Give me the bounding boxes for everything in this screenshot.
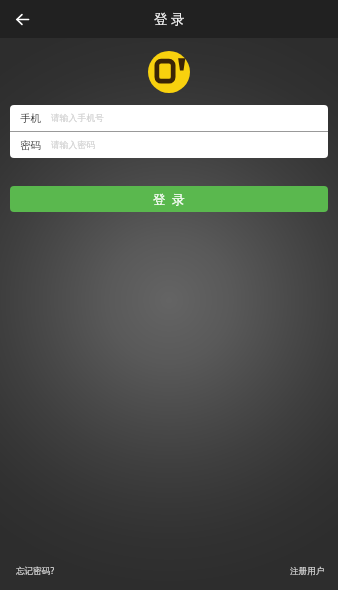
staticText: 登 录 [153, 191, 186, 208]
button[interactable]: Back [7, 4, 37, 34]
button[interactable]: 忘记密码? [16, 565, 55, 577]
button[interactable]: 手机 [10, 105, 328, 131]
button[interactable]: 注册用户 [290, 566, 325, 577]
staticText: 请输入手机号 [51, 113, 104, 124]
staticText: 忘记密码? [16, 565, 55, 577]
staticText: 请输入密码 [51, 140, 95, 151]
staticText: 登 录 [154, 10, 185, 28]
other: App logo [148, 51, 190, 93]
staticText: 手机 [20, 112, 41, 125]
staticText: 密码 [20, 139, 41, 152]
button[interactable]: 登 录 [10, 186, 328, 212]
staticText: 注册用户 [290, 566, 325, 577]
button[interactable]: 密码 [10, 132, 328, 158]
